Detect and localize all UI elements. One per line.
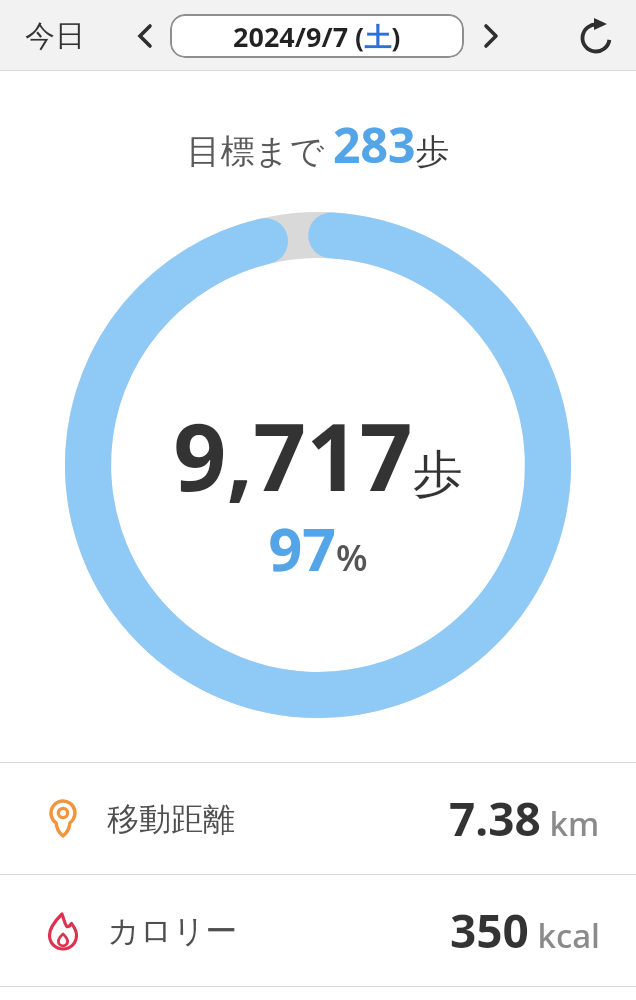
- button[interactable]: 今日: [25, 17, 85, 55]
- staticText: カロリー: [107, 911, 238, 951]
- staticText: 移動距離: [107, 799, 235, 839]
- button[interactable]: 2024/9/7 (土): [170, 14, 464, 58]
- button[interactable]: [478, 24, 502, 48]
- staticText: 2024/9/7 (土): [233, 18, 401, 55]
- button[interactable]: [134, 24, 158, 48]
- button[interactable]: カロリー: [0, 875, 636, 986]
- button[interactable]: 移動距離: [0, 763, 636, 874]
- staticText: 目標まで 283歩: [0, 112, 636, 177]
- staticText: 9,717歩: [0, 392, 636, 519]
- staticText: 350 kcal: [450, 899, 600, 962]
- staticText: 7.38 km: [449, 787, 600, 850]
- staticText: 97%: [0, 508, 636, 588]
- button[interactable]: [578, 19, 614, 55]
